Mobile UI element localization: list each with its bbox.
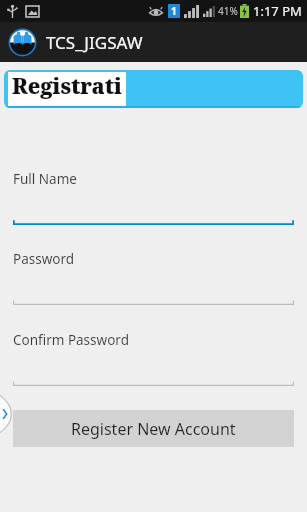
staticText: 1: [171, 4, 177, 18]
staticText: 1:17 PM: [253, 2, 302, 20]
button[interactable]: Open navigation drawer: [0, 392, 12, 436]
staticText: Register New Account: [71, 418, 236, 440]
button[interactable]: Register New Account: [13, 410, 294, 447]
button[interactable]: [13, 218, 294, 225]
staticText: 41%: [218, 4, 238, 18]
button[interactable]: [13, 298, 294, 305]
staticText: TCS_JIGSAW: [46, 31, 143, 54]
button[interactable]: [13, 379, 294, 386]
staticText: Confirm Password: [13, 331, 129, 349]
staticText: Password: [13, 250, 75, 268]
staticText: Registration: [8, 72, 126, 106]
staticText: Full Name: [13, 170, 77, 188]
